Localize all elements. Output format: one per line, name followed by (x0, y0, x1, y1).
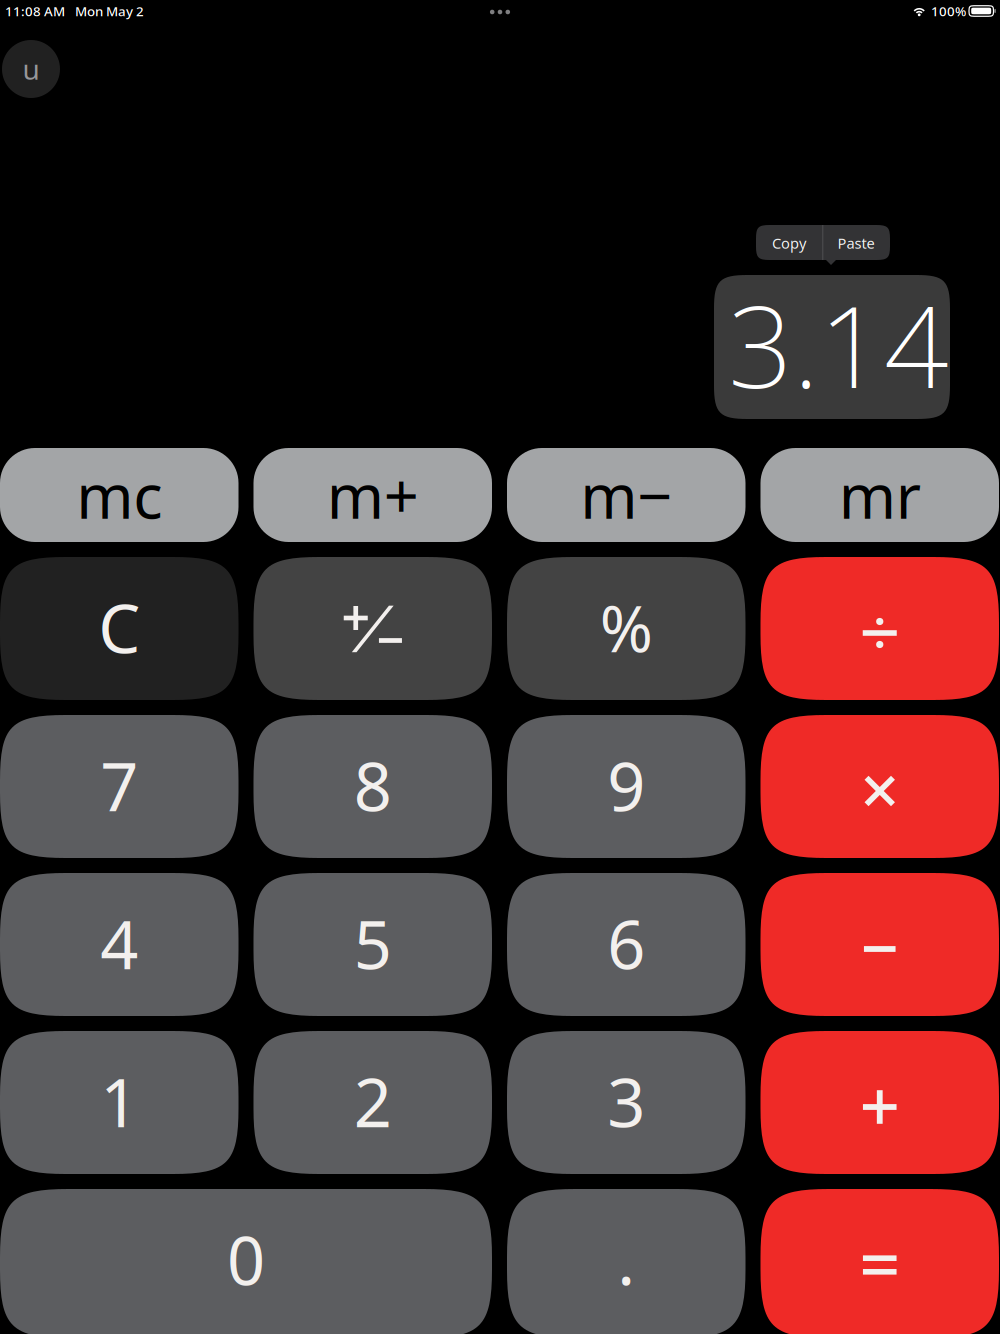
button[interactable]: 9 (507, 715, 745, 858)
button[interactable]: Divide (760, 557, 999, 700)
button[interactable]: Minus (760, 873, 999, 1016)
button[interactable]: m+ (253, 448, 492, 542)
staticText: 9 (607, 741, 645, 830)
staticText: m− (580, 454, 672, 536)
staticText: 100% (931, 2, 966, 20)
staticText: 7 (100, 741, 138, 830)
staticText: Copy (772, 233, 806, 253)
staticText: 2 (354, 1057, 392, 1146)
button[interactable]: Plus minus (253, 557, 492, 700)
staticText: 11:08 AM (5, 2, 65, 20)
button[interactable]: 5 (253, 873, 492, 1016)
staticText: u (22, 50, 39, 88)
button[interactable]: Account (2, 40, 60, 98)
button[interactable]: C (0, 557, 238, 700)
staticText: Paste (837, 233, 874, 253)
button[interactable]: Multiply (760, 715, 999, 858)
staticText: mc (76, 454, 162, 536)
button[interactable]: 4 (0, 873, 238, 1016)
staticText: 6 (607, 899, 645, 988)
button[interactable]: 3 (507, 1031, 745, 1174)
staticText: 3.14 (728, 269, 949, 419)
staticText: 8 (354, 741, 392, 830)
button[interactable]: . (507, 1189, 745, 1334)
staticText: Mon May 2 (75, 2, 144, 20)
staticText: m+ (327, 454, 419, 536)
staticText: 0 (227, 1215, 265, 1304)
button[interactable]: 0 (0, 1189, 492, 1334)
staticText: . (617, 1215, 635, 1304)
staticText: 5 (354, 899, 392, 988)
button[interactable]: Paste (822, 225, 890, 260)
staticText: % (600, 585, 653, 670)
button[interactable]: 8 (253, 715, 492, 858)
staticText: 1 (100, 1057, 138, 1146)
button[interactable]: 1 (0, 1031, 238, 1174)
button[interactable]: mc (0, 448, 238, 542)
button[interactable]: % (507, 557, 745, 700)
staticText: 3 (607, 1057, 645, 1146)
staticText: 4 (100, 899, 138, 988)
button[interactable]: 2 (253, 1031, 492, 1174)
button[interactable]: m− (507, 448, 745, 542)
button[interactable]: Plus (760, 1031, 999, 1174)
button[interactable]: Copy (756, 225, 822, 260)
staticText: mr (839, 454, 921, 536)
staticText: C (98, 583, 140, 672)
button[interactable]: 6 (507, 873, 745, 1016)
button[interactable]: mr (760, 448, 999, 542)
button[interactable]: 7 (0, 715, 238, 858)
button[interactable]: Equals (760, 1189, 999, 1334)
